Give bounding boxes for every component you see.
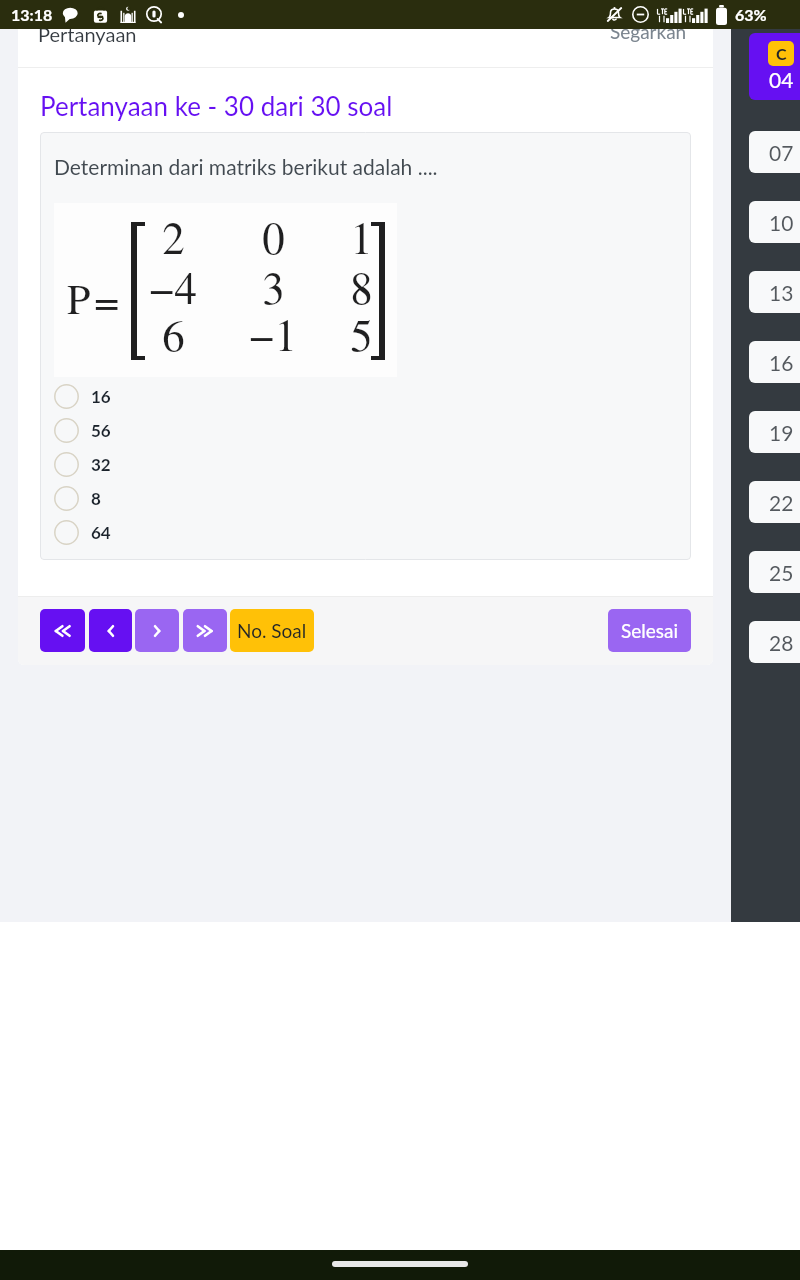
staticText: P <box>67 270 91 326</box>
staticText: 63% <box>735 5 767 24</box>
staticText: 13 <box>769 280 794 305</box>
staticText: Segarkan <box>610 20 687 43</box>
staticText: Pertanyaan ke - 30 dari 30 soal <box>40 90 393 121</box>
staticText: 28 <box>769 630 794 655</box>
staticText: 3 <box>262 257 285 317</box>
staticText: No. Soal <box>237 619 307 642</box>
staticText: 56 <box>91 420 111 440</box>
staticText: 25 <box>769 560 794 585</box>
button[interactable]: 16 <box>54 379 254 413</box>
button[interactable]: 07 <box>749 131 800 173</box>
staticText: 64 <box>91 522 111 542</box>
button[interactable]: 8 <box>54 481 254 515</box>
button[interactable]: 25 <box>749 551 800 593</box>
button[interactable]: 28 <box>749 621 800 663</box>
button[interactable]: Selesai <box>608 609 691 652</box>
staticText: 07 <box>769 140 794 165</box>
button[interactable]: 16 <box>749 341 800 383</box>
staticText: 0 <box>262 207 285 267</box>
button[interactable]: 64 <box>54 515 254 549</box>
staticText: −4 <box>149 257 197 317</box>
button[interactable]: 10 <box>749 201 800 243</box>
staticText: 16 <box>91 386 111 406</box>
staticText: 22 <box>769 490 794 515</box>
staticText: Selesai <box>621 619 679 642</box>
staticText: 10 <box>769 210 794 235</box>
staticText: Pertanyaan <box>38 22 137 46</box>
button[interactable]: C <box>749 33 800 100</box>
button[interactable]: 19 <box>749 411 800 453</box>
staticText: 5 <box>350 304 373 364</box>
staticText: 04 <box>769 67 794 92</box>
staticText: −1 <box>249 304 297 364</box>
button[interactable]: 13 <box>749 271 800 313</box>
button[interactable]: First question <box>40 609 85 652</box>
staticText: 8 <box>91 488 101 508</box>
button[interactable]: Next question <box>135 609 179 652</box>
staticText: 32 <box>91 454 111 474</box>
staticText: 16 <box>769 350 794 375</box>
staticText: 2 <box>162 207 185 267</box>
button[interactable]: Segarkan <box>18 14 713 48</box>
staticText: = <box>94 269 120 329</box>
staticText: 1 <box>350 207 373 267</box>
staticText: 6 <box>162 304 185 364</box>
button[interactable]: 56 <box>54 413 254 447</box>
button[interactable]: Last question <box>183 609 227 652</box>
button[interactable]: 32 <box>54 447 254 481</box>
button[interactable]: Previous question <box>89 609 132 652</box>
staticText: 13:18 <box>11 5 53 24</box>
staticText: C <box>776 44 787 63</box>
staticText: Determinan dari matriks berikut adalah .… <box>54 154 438 179</box>
button[interactable]: 22 <box>749 481 800 523</box>
staticText: 19 <box>769 420 794 445</box>
staticText: 8 <box>350 257 373 317</box>
button[interactable]: No. Soal <box>230 609 314 652</box>
